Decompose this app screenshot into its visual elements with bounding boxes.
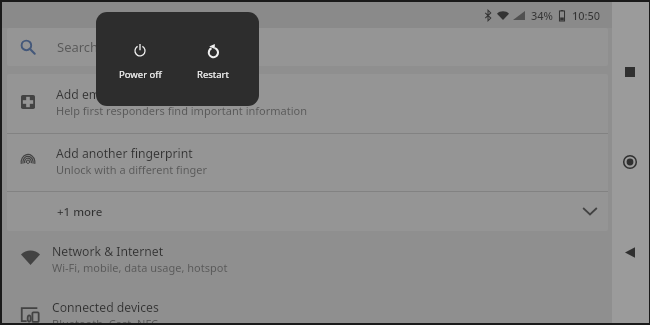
staticText: Add emergency information: [56, 86, 218, 103]
button[interactable]: Recent apps: [616, 58, 644, 86]
staticText: +1 more: [57, 204, 103, 220]
staticText: Add another fingerprint: [56, 145, 193, 162]
button[interactable]: Home: [616, 148, 644, 176]
staticText: Network & Internet: [52, 243, 164, 260]
button[interactable]: Connected devices: [8, 292, 606, 323]
staticText: Power off: [119, 68, 162, 81]
staticText: 34%: [531, 8, 553, 23]
staticText: Search settings: [57, 38, 151, 56]
button[interactable]: Restart: [179, 43, 247, 81]
button[interactable]: +1 more: [7, 192, 608, 231]
button[interactable]: Network & Internet: [8, 236, 606, 292]
staticText: Unlock with a different finger: [56, 162, 207, 177]
staticText: Connected devices: [52, 299, 159, 316]
button[interactable]: Add another fingerprint: [7, 134, 608, 191]
staticText: Help first responders find important inf…: [56, 103, 307, 118]
button[interactable]: Add emergency information: [7, 74, 608, 133]
button[interactable]: Search settings: [7, 28, 608, 66]
staticText: Wi-Fi, mobile, data usage, hotspot: [52, 260, 228, 275]
button[interactable]: Power off: [106, 43, 174, 81]
staticText: Bluetooth, Cast, NFC: [52, 316, 159, 323]
staticText: 10:50: [572, 8, 601, 23]
button[interactable]: Back: [616, 238, 644, 266]
staticText: Restart: [197, 68, 229, 81]
